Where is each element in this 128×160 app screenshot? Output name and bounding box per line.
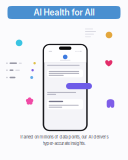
staticText: Trained on millions of data points, our … — [19, 134, 108, 139]
staticText: hyper-accurate insights. — [42, 141, 85, 146]
staticText: AI Health for All — [33, 7, 94, 18]
button[interactable]: AI Health for All — [7, 6, 120, 19]
